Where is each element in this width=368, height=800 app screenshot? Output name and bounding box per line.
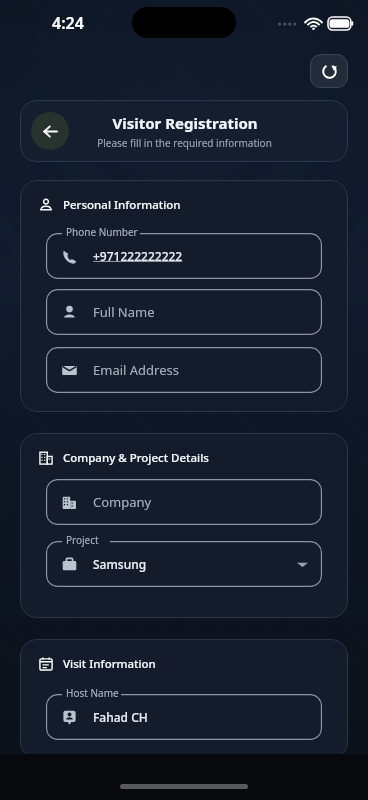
button[interactable]: Fahad CH <box>46 694 322 740</box>
staticText: Phone Number <box>66 225 138 239</box>
button[interactable]: Company <box>46 479 322 525</box>
staticText: Visit Information <box>63 656 156 672</box>
staticText: Host Name <box>66 686 119 700</box>
button[interactable]: Email Address <box>46 347 322 393</box>
staticText: Samsung <box>93 556 147 572</box>
staticText: Email Address <box>93 361 179 379</box>
staticText: Personal Information <box>63 197 181 213</box>
button[interactable]: Refresh <box>310 54 348 88</box>
staticText: +971222222222 <box>93 248 183 264</box>
staticText: Visitor Registration <box>112 113 258 133</box>
staticText: Please fill in the required information <box>97 136 272 150</box>
button[interactable]: Full Name <box>46 289 322 335</box>
staticText: Company <box>93 493 152 511</box>
staticText: Fahad CH <box>93 709 148 725</box>
staticText: 4:24 <box>52 12 84 34</box>
button[interactable]: Samsung <box>46 541 322 587</box>
staticText: Project <box>66 533 99 547</box>
staticText: Company & Project Details <box>63 450 209 466</box>
button[interactable]: Back <box>31 112 69 150</box>
button[interactable]: +971222222222 <box>46 233 322 279</box>
staticText: Full Name <box>93 303 155 321</box>
